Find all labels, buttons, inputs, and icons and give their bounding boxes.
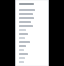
button[interactable]: Option eight (19, 44, 45, 48)
button[interactable]: Section label four (19, 56, 45, 60)
button[interactable]: Option three (19, 16, 45, 20)
button[interactable]: Option five (19, 24, 45, 28)
button[interactable]: Section label two (19, 36, 45, 40)
button[interactable]: Screen title (19, 3, 45, 5)
button[interactable]: Option nine (19, 52, 45, 56)
other: Option six (19, 33, 28, 35)
button[interactable]: Section label three (19, 48, 45, 52)
button[interactable]: Option seven (19, 40, 45, 44)
other: Screen title (19, 3, 34, 5)
button[interactable]: Option six (19, 32, 45, 36)
button[interactable]: Section label (19, 28, 45, 32)
button[interactable]: Option one (19, 8, 45, 12)
button[interactable]: Option ten (19, 60, 45, 64)
button[interactable]: Option two (19, 12, 45, 16)
other: Option eight (19, 45, 26, 47)
button[interactable]: Option four (19, 20, 45, 24)
other: Option nine (19, 53, 28, 55)
